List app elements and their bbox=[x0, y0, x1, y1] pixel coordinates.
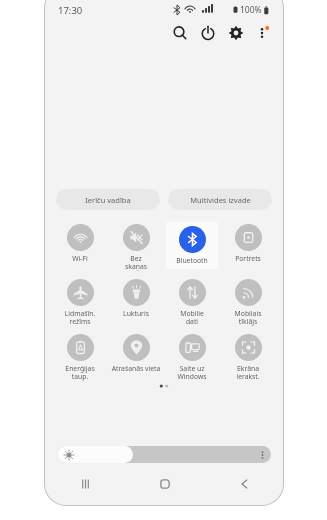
button[interactable]: Recent apps bbox=[45, 473, 125, 495]
staticText: Mobilais tīklājs bbox=[222, 309, 274, 326]
staticText: Bez skaņas bbox=[110, 254, 162, 271]
staticText: Bluetooth bbox=[166, 256, 218, 265]
staticText: Lukturis bbox=[110, 309, 162, 318]
staticText: 100% bbox=[240, 4, 262, 16]
button[interactable]: Bez skaņas bbox=[110, 222, 162, 271]
button[interactable]: Ekrāna ierakst. bbox=[222, 332, 274, 381]
button[interactable]: Ierīču vadība bbox=[56, 189, 160, 210]
button[interactable]: Back bbox=[204, 473, 283, 495]
button[interactable]: Search bbox=[169, 22, 191, 44]
button[interactable]: Saite uz Windows bbox=[166, 332, 218, 381]
button[interactable]: Enerģijas taup. bbox=[54, 332, 106, 381]
staticText: Ekrāna ierakst. bbox=[222, 364, 274, 381]
staticText: Lidmašīn. režīms bbox=[54, 309, 106, 326]
button[interactable]: Wi-Fi bbox=[54, 222, 106, 263]
staticText: Portrets bbox=[222, 254, 274, 263]
button[interactable]: Portrets bbox=[222, 222, 274, 263]
staticText: Enerģijas taup. bbox=[54, 364, 106, 381]
staticText: Atrašanās vieta bbox=[110, 364, 162, 373]
button[interactable]: Lukturis bbox=[110, 277, 162, 318]
staticText: Multivides izvade bbox=[190, 195, 251, 205]
button[interactable]: Bluetooth bbox=[166, 222, 218, 269]
button[interactable]: Atrašanās vieta bbox=[110, 332, 162, 373]
staticText: Mobilie dati bbox=[166, 309, 218, 326]
staticText: Saite uz Windows bbox=[166, 364, 218, 381]
staticText: 17:30 bbox=[58, 4, 83, 17]
button[interactable]: Multivides izvade bbox=[168, 189, 272, 210]
staticText: Wi-Fi bbox=[54, 254, 106, 263]
button[interactable]: Mobilais tīklājs bbox=[222, 277, 274, 326]
staticText: Ierīču vadība bbox=[85, 195, 131, 205]
button[interactable]: Mobilie dati bbox=[166, 277, 218, 326]
button[interactable]: Power bbox=[197, 22, 219, 44]
button[interactable]: Lidmašīn. režīms bbox=[54, 277, 106, 326]
button[interactable]: More options bbox=[251, 22, 273, 44]
button[interactable]: Settings bbox=[225, 22, 247, 44]
button[interactable]: Home bbox=[125, 473, 204, 495]
button[interactable]: Brightness bbox=[57, 446, 271, 463]
